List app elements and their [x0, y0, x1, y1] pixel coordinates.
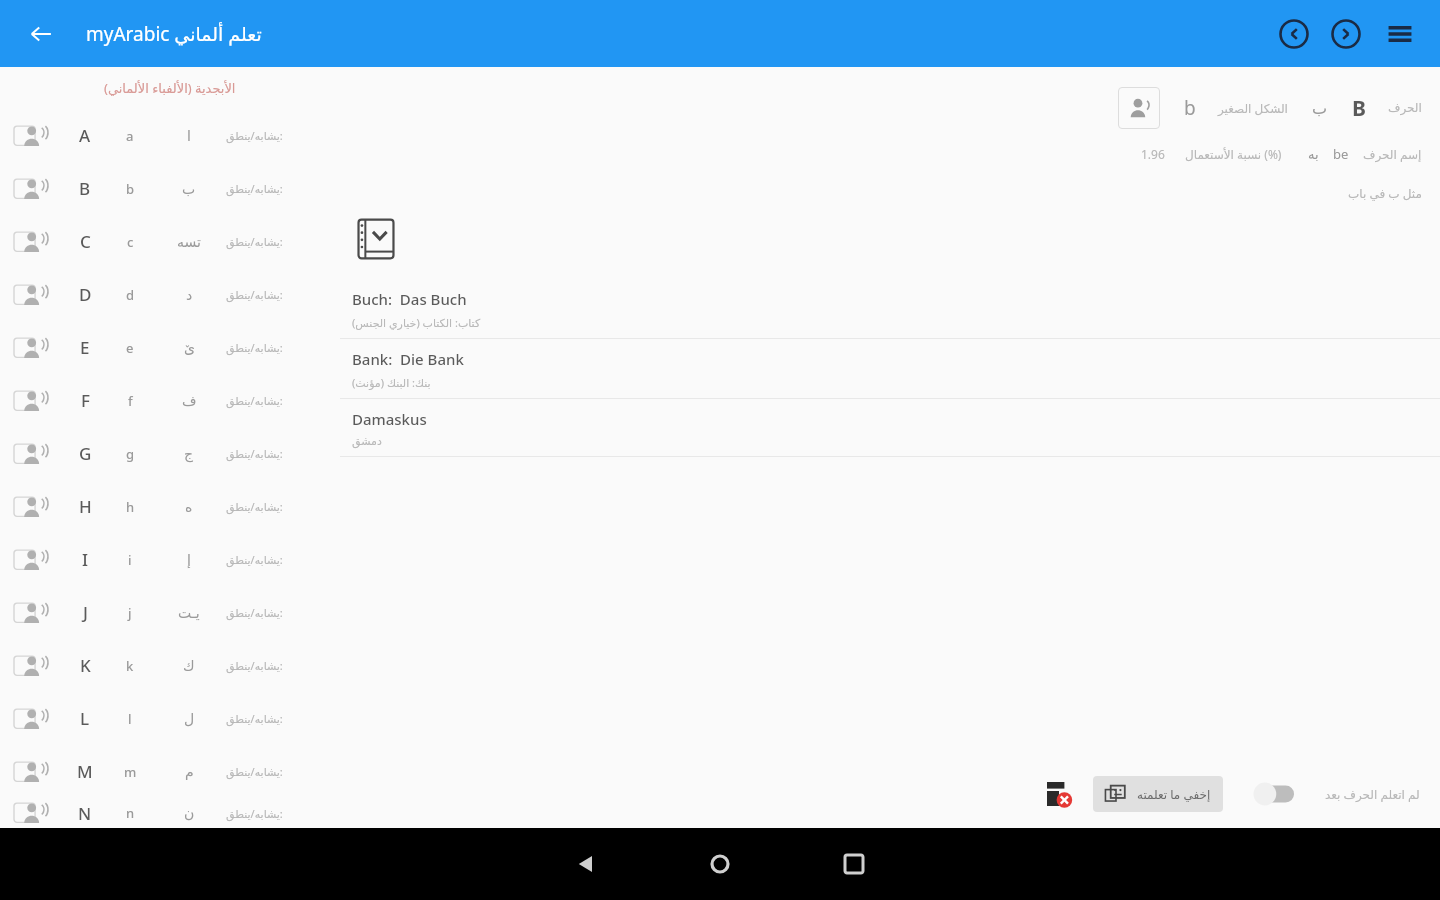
staticText: ب — [182, 181, 196, 197]
button[interactable]: Menu — [1378, 12, 1422, 56]
staticText: لم اتعلم الحرف بعد — [1325, 786, 1420, 802]
staticText: J — [83, 601, 88, 624]
staticText: ا — [187, 128, 191, 144]
staticText: m — [124, 763, 137, 781]
staticText: I — [82, 548, 89, 571]
staticText: myArabic تعلم ألماني — [86, 21, 262, 47]
button[interactable]: E — [0, 321, 340, 374]
staticText: الحرف — [1388, 101, 1422, 115]
staticText: إ — [187, 552, 191, 568]
staticText: b — [1184, 95, 1196, 121]
staticText: يشابه/ينطق: — [226, 128, 283, 143]
staticText: يشابه/ينطق: — [226, 446, 283, 461]
staticText: C — [80, 230, 91, 253]
staticText: يشابه/ينطق: — [226, 393, 283, 408]
staticText: د — [186, 287, 193, 303]
button[interactable]: N — [0, 798, 340, 828]
staticText: b — [126, 180, 135, 198]
staticText: تسه — [177, 234, 201, 250]
button[interactable]: Bank: Die Bank — [340, 339, 1440, 398]
staticText: Damaskus — [352, 409, 427, 429]
staticText: يشابه/ينطق: — [226, 552, 283, 567]
button[interactable]: D — [0, 268, 340, 321]
staticText: يشابه/ينطق: — [226, 806, 283, 821]
staticText: F — [81, 389, 90, 412]
staticText: 1.96 — [1141, 146, 1165, 162]
staticText: M — [77, 760, 93, 783]
staticText: l — [128, 710, 132, 728]
staticText: يشابه/ينطق: — [226, 658, 283, 673]
staticText: نسبة الأستعمال (%) — [1185, 146, 1282, 162]
staticText: ب — [1312, 99, 1328, 118]
button[interactable]: Toggle learned letters — [1253, 779, 1307, 809]
button[interactable]: H — [0, 480, 340, 533]
staticText: i — [128, 551, 132, 569]
staticText: Bank: Die Bank — [352, 349, 464, 369]
staticText: يـت — [178, 605, 200, 621]
staticText: ل — [184, 711, 195, 727]
staticText: h — [126, 498, 135, 516]
staticText: k — [126, 657, 134, 675]
button[interactable]: A — [0, 109, 340, 162]
button[interactable]: I — [0, 533, 340, 586]
staticText: كتاب: الكتاب (خياري الجنس) — [352, 315, 481, 330]
staticText: g — [126, 445, 135, 463]
staticText: B — [1352, 94, 1366, 123]
button[interactable]: F — [0, 374, 340, 427]
staticText: n — [126, 804, 135, 822]
staticText: يشابه/ينطق: — [226, 234, 283, 249]
staticText: d — [126, 286, 135, 304]
button[interactable]: Recent apps — [819, 829, 889, 899]
staticText: c — [127, 233, 134, 251]
staticText: الشكل الصغير — [1218, 100, 1288, 116]
staticText: إسم الحرف — [1363, 146, 1422, 162]
button[interactable]: K — [0, 639, 340, 692]
button[interactable]: Next letter — [1324, 12, 1368, 56]
staticText: الأبجدية (الألفباء الألماني) — [104, 79, 236, 97]
staticText: K — [80, 654, 91, 677]
staticText: A — [79, 124, 91, 147]
staticText: a — [126, 127, 134, 145]
button[interactable]: C — [0, 215, 340, 268]
staticText: ك — [183, 658, 195, 674]
button[interactable]: L — [0, 692, 340, 745]
staticText: H — [79, 495, 92, 518]
staticText: ێ — [184, 340, 195, 356]
staticText: E — [80, 336, 90, 359]
staticText: ج — [184, 446, 194, 462]
button[interactable]: Previous letter — [1272, 12, 1316, 56]
staticText: م — [185, 764, 194, 780]
button[interactable]: B — [0, 162, 340, 215]
staticText: ف — [182, 393, 197, 409]
staticText: Buch: Das Buch — [352, 289, 467, 309]
staticText: إخفي ما تعلمته — [1137, 786, 1211, 802]
staticText: ن — [184, 805, 195, 821]
button[interactable]: J — [0, 586, 340, 639]
button[interactable]: Back — [18, 11, 64, 57]
staticText: دمشق — [352, 435, 382, 448]
button[interactable]: G — [0, 427, 340, 480]
button[interactable]: إخفي ما تعلمته — [1093, 776, 1223, 812]
staticText: بنك: البنك (مؤنث) — [352, 375, 431, 390]
button[interactable]: Buch: Das Buch — [340, 279, 1440, 338]
staticText: به — [1308, 147, 1319, 162]
staticText: يشابه/ينطق: — [226, 711, 283, 726]
staticText: يشابه/ينطق: — [226, 340, 283, 355]
staticText: يشابه/ينطق: — [226, 181, 283, 196]
staticText: يشابه/ينطق: — [226, 287, 283, 302]
button[interactable]: Clear — [1039, 774, 1079, 814]
staticText: N — [78, 802, 92, 825]
staticText: يشابه/ينطق: — [226, 764, 283, 779]
staticText: e — [126, 339, 134, 357]
staticText: be — [1333, 145, 1349, 163]
button[interactable]: Back — [551, 829, 621, 899]
staticText: D — [79, 283, 92, 306]
staticText: مثل ب في باب — [1348, 185, 1422, 201]
button[interactable]: Dictionary — [352, 215, 400, 263]
button[interactable]: Play pronunciation — [1118, 87, 1160, 129]
button[interactable]: Home — [685, 829, 755, 899]
staticText: B — [79, 177, 91, 200]
staticText: G — [79, 442, 92, 465]
button[interactable]: Damaskus — [340, 399, 1440, 456]
button[interactable]: M — [0, 745, 340, 798]
